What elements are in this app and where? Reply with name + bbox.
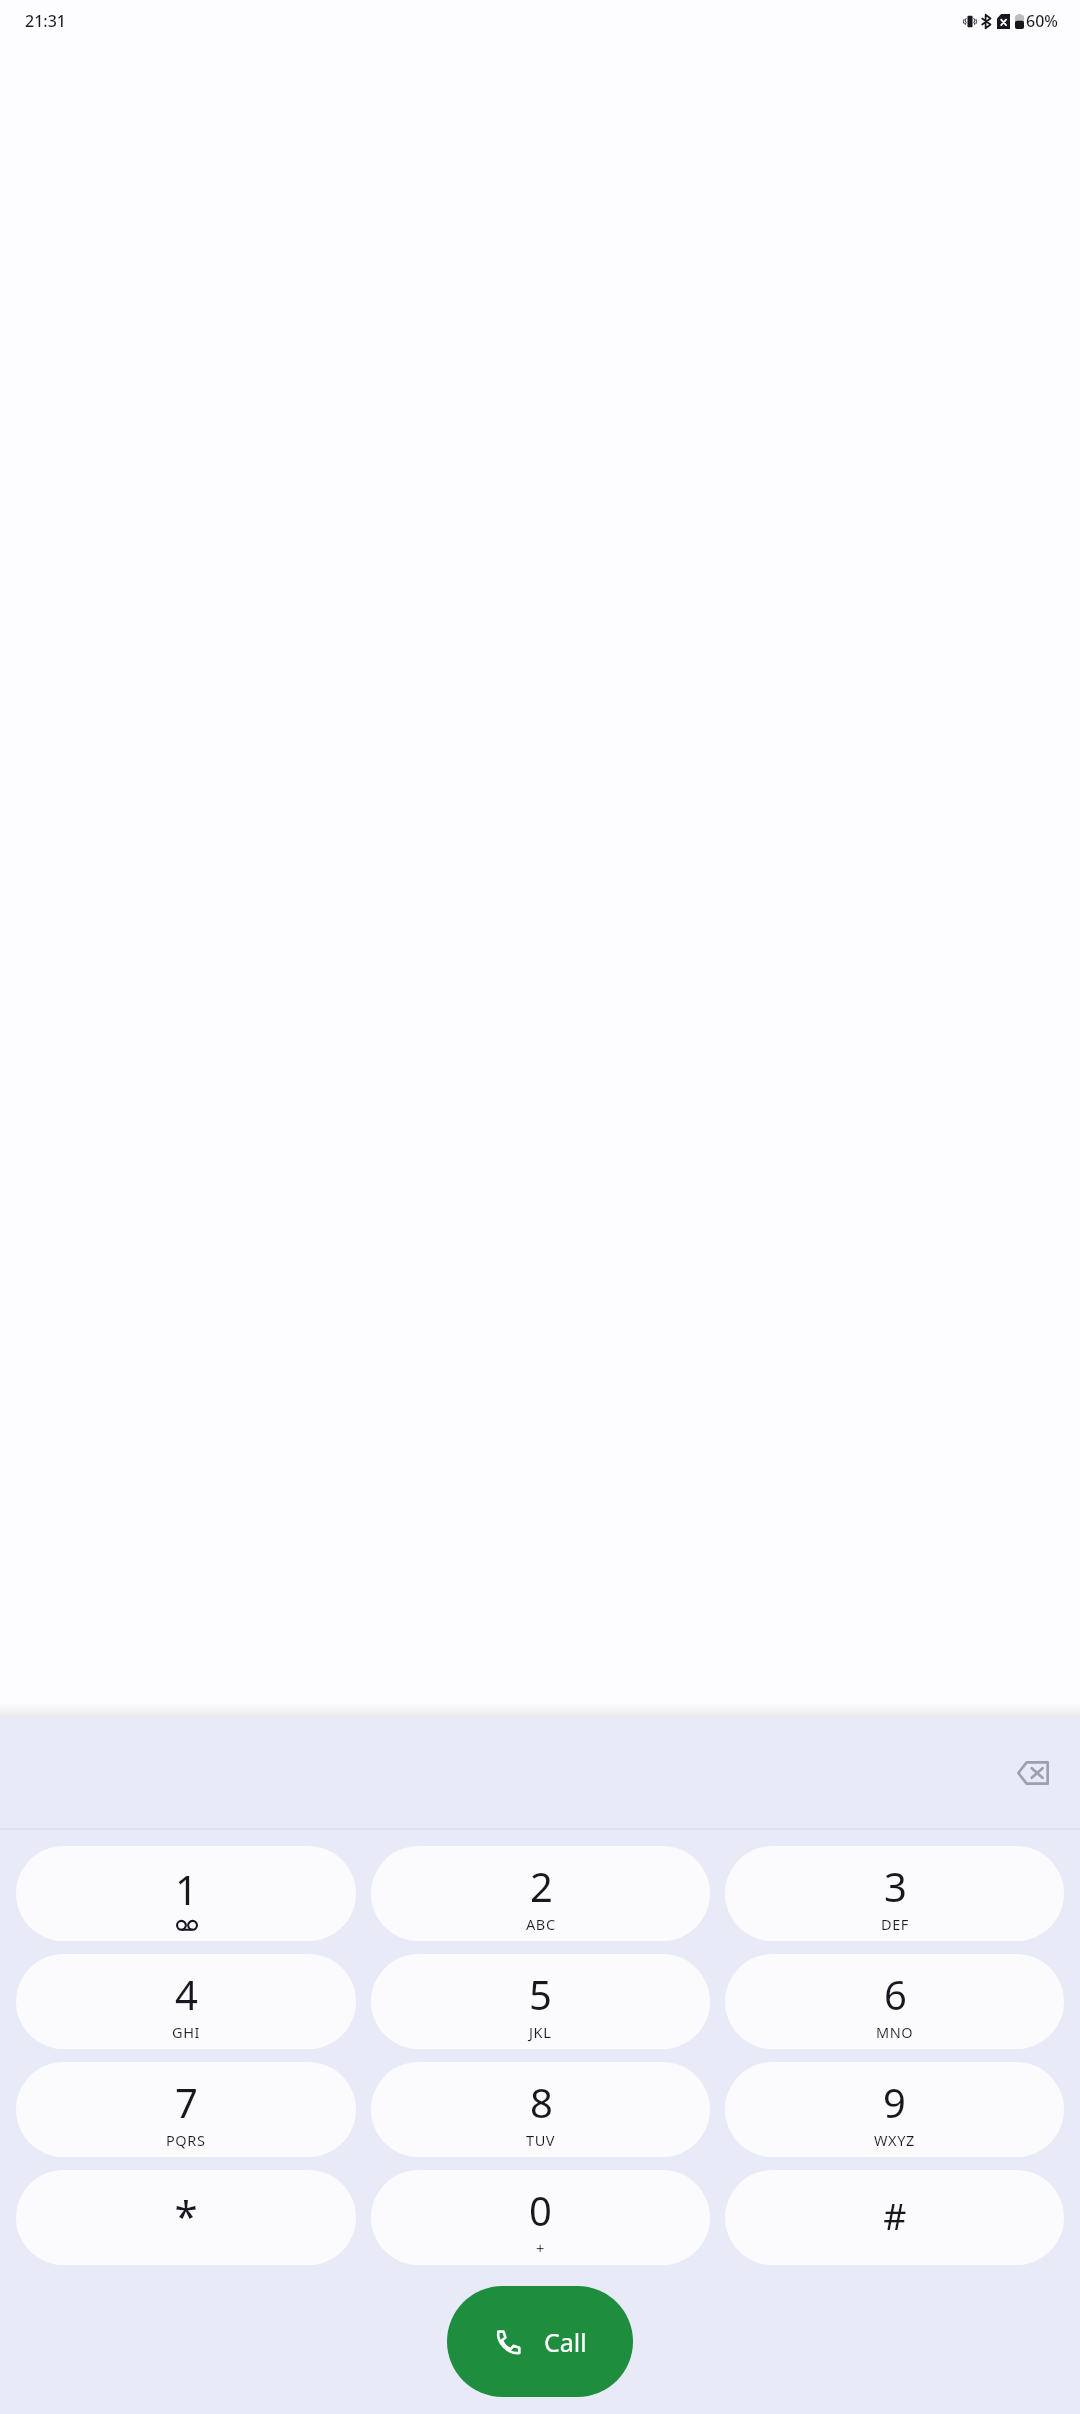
staticText: 21:31 [25,10,66,32]
staticText: DEF [881,1914,909,1934]
staticText: 6 [884,1967,907,2021]
staticText: ABC [526,1914,556,1934]
staticText: MNO [876,2022,914,2042]
staticText: 8 [530,2075,553,2129]
staticText: # [883,2192,907,2241]
button[interactable]: Call [447,2286,633,2397]
button[interactable]: 9 [725,2062,1064,2157]
button[interactable]: 1 [16,1846,356,1941]
staticText: 1 [175,1862,198,1916]
staticText: 9 [883,2075,906,2129]
staticText: JKL [529,2022,552,2042]
button[interactable]: # [725,2170,1064,2265]
staticText: 2 [530,1859,553,1913]
button[interactable]: 7 [16,2062,356,2157]
staticText: * [174,2187,198,2244]
staticText: 3 [884,1859,907,1913]
staticText: TUV [526,2130,556,2150]
staticText: 4 [175,1967,198,2021]
button[interactable]: 6 [725,1954,1064,2049]
button[interactable]: 0 [371,2170,710,2265]
staticText: + [536,2238,545,2258]
button[interactable]: Backspace [1000,1740,1066,1806]
button[interactable]: 2 [371,1846,710,1941]
button[interactable]: 3 [725,1846,1064,1941]
staticText: Call [544,2325,587,2359]
staticText: WXYZ [874,2130,915,2150]
button[interactable]: 5 [371,1954,710,2049]
button[interactable]: * [16,2170,356,2265]
staticText: 7 [175,2075,198,2129]
staticText: 60% [1026,10,1058,32]
staticText: 0 [529,2183,552,2237]
staticText: PQRS [166,2130,206,2150]
staticText: 5 [529,1967,552,2021]
button[interactable]: 8 [371,2062,710,2157]
button[interactable]: 4 [16,1954,356,2049]
staticText: GHI [172,2022,201,2042]
